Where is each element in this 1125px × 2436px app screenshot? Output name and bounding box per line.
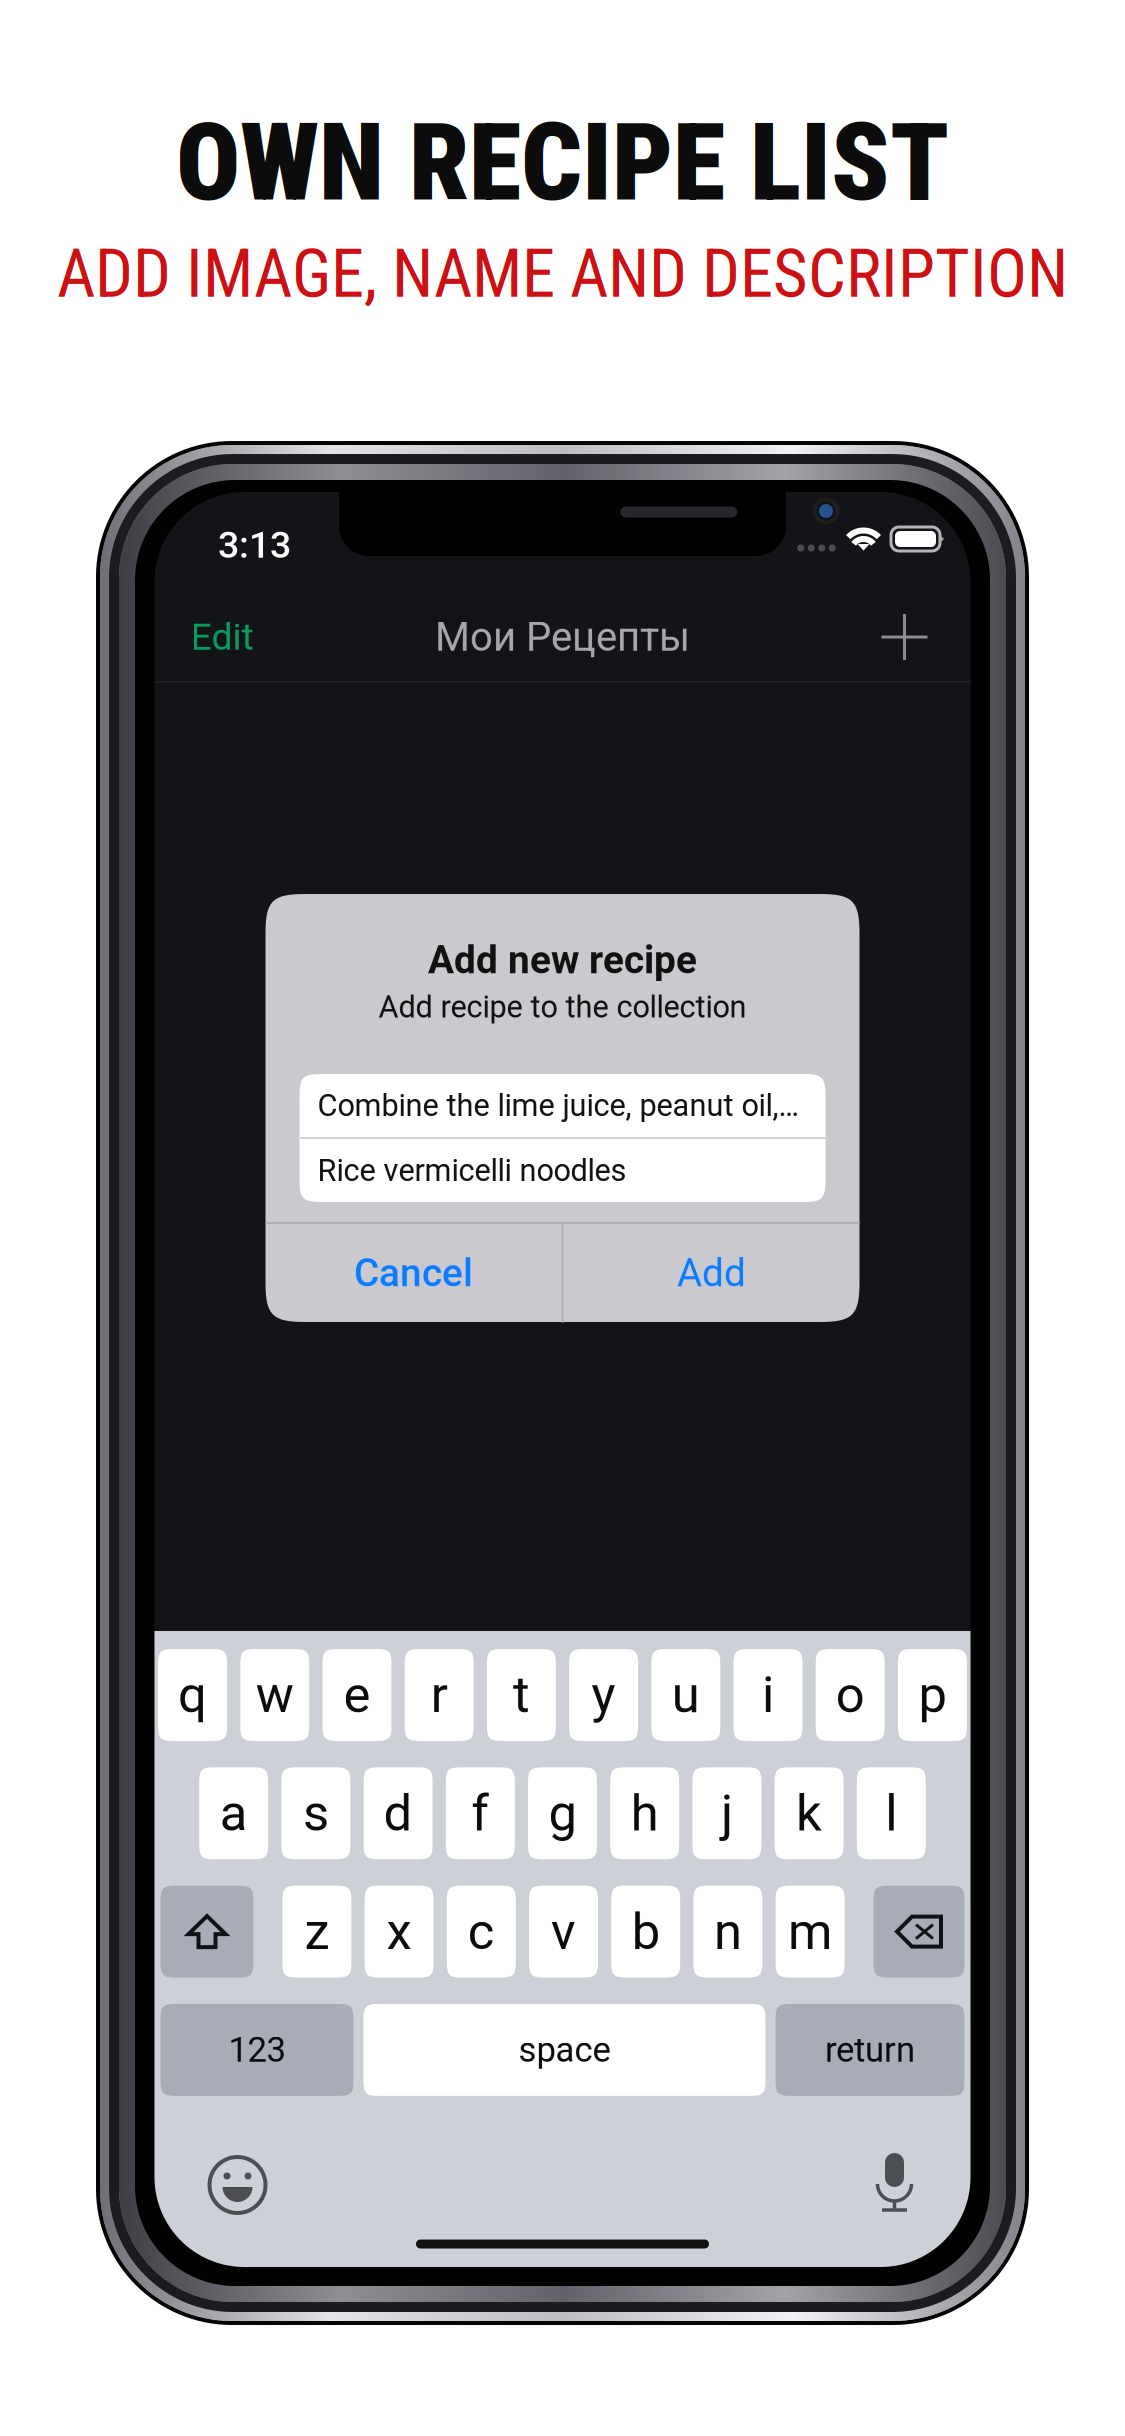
- button[interactable]: e: [322, 1649, 391, 1741]
- button[interactable]: x: [365, 1886, 434, 1978]
- staticText: Add recipe to the collection: [378, 989, 746, 1025]
- button[interactable]: z: [282, 1886, 351, 1978]
- staticText: space: [518, 2030, 610, 2070]
- button[interactable]: v: [529, 1886, 598, 1978]
- staticText: e: [343, 1665, 370, 1725]
- staticText: Cancel: [354, 1250, 473, 1296]
- staticText: f: [471, 1784, 489, 1843]
- staticText: OWN RECIPE LIST: [176, 100, 949, 225]
- button[interactable]: f: [446, 1767, 515, 1859]
- button[interactable]: Cancel: [265, 1223, 561, 1322]
- button[interactable]: space: [363, 2004, 765, 2096]
- button[interactable]: Shift: [160, 1886, 253, 1978]
- button[interactable]: j: [692, 1767, 761, 1859]
- staticText: r: [431, 1665, 448, 1725]
- staticText: 3:13: [218, 523, 291, 567]
- button[interactable]: r: [405, 1649, 474, 1741]
- staticText: d: [384, 1784, 413, 1843]
- staticText: ADD IMAGE, NAME AND DESCRIPTION: [57, 235, 1068, 313]
- staticText: Edit: [190, 615, 253, 659]
- staticText: Add new recipe: [428, 937, 697, 983]
- staticText: v: [551, 1902, 576, 1961]
- button[interactable]: i: [733, 1649, 802, 1741]
- button[interactable]: t: [487, 1649, 556, 1741]
- staticText: m: [788, 1902, 832, 1961]
- button[interactable]: 123: [160, 2004, 353, 2096]
- button[interactable]: a: [199, 1767, 268, 1859]
- staticText: g: [548, 1784, 576, 1843]
- staticText: o: [836, 1665, 865, 1725]
- button[interactable]: o: [816, 1649, 885, 1741]
- button[interactable]: Emoji keyboard: [207, 2155, 267, 2215]
- button[interactable]: w: [240, 1649, 309, 1741]
- staticText: u: [672, 1665, 700, 1725]
- staticText: j: [721, 1784, 733, 1843]
- button[interactable]: s: [281, 1767, 350, 1859]
- staticText: Rice vermicelli noodles: [317, 1152, 626, 1188]
- staticText: t: [513, 1665, 530, 1725]
- staticText: y: [592, 1665, 616, 1725]
- button[interactable]: b: [611, 1886, 680, 1978]
- button[interactable]: q: [158, 1649, 227, 1741]
- button[interactable]: m: [776, 1886, 845, 1978]
- staticText: a: [220, 1784, 248, 1843]
- staticText: w: [256, 1665, 294, 1725]
- staticText: c: [468, 1902, 495, 1961]
- button[interactable]: d: [364, 1767, 433, 1859]
- staticText: 123: [228, 2030, 285, 2070]
- staticText: Combine the lime juice, peanut oil,…: [317, 1087, 799, 1123]
- button[interactable]: k: [775, 1767, 844, 1859]
- staticText: b: [632, 1902, 660, 1961]
- button[interactable]: c: [447, 1886, 516, 1978]
- staticText: n: [714, 1902, 742, 1961]
- button[interactable]: Add recipe: [868, 591, 940, 683]
- staticText: x: [387, 1902, 412, 1961]
- staticText: z: [304, 1902, 329, 1961]
- staticText: Add: [677, 1250, 746, 1296]
- staticText: q: [178, 1665, 207, 1725]
- staticText: Мои Рецепты: [435, 614, 690, 660]
- button[interactable]: g: [528, 1767, 597, 1859]
- staticText: k: [796, 1784, 822, 1843]
- staticText: i: [762, 1665, 774, 1725]
- staticText: p: [918, 1665, 946, 1725]
- staticText: l: [885, 1784, 897, 1843]
- button[interactable]: Dictate: [870, 2149, 918, 2215]
- button[interactable]: Delete: [873, 1886, 964, 1978]
- button[interactable]: y: [569, 1649, 638, 1741]
- button[interactable]: Edit: [178, 591, 265, 683]
- button[interactable]: h: [610, 1767, 679, 1859]
- button[interactable]: return: [775, 2004, 964, 2096]
- button[interactable]: p: [898, 1649, 967, 1741]
- button[interactable]: n: [693, 1886, 762, 1978]
- button[interactable]: u: [651, 1649, 720, 1741]
- button[interactable]: Add: [563, 1223, 859, 1322]
- staticText: h: [631, 1784, 659, 1843]
- button[interactable]: l: [857, 1767, 926, 1859]
- staticText: return: [825, 2030, 915, 2070]
- staticText: s: [303, 1784, 329, 1843]
